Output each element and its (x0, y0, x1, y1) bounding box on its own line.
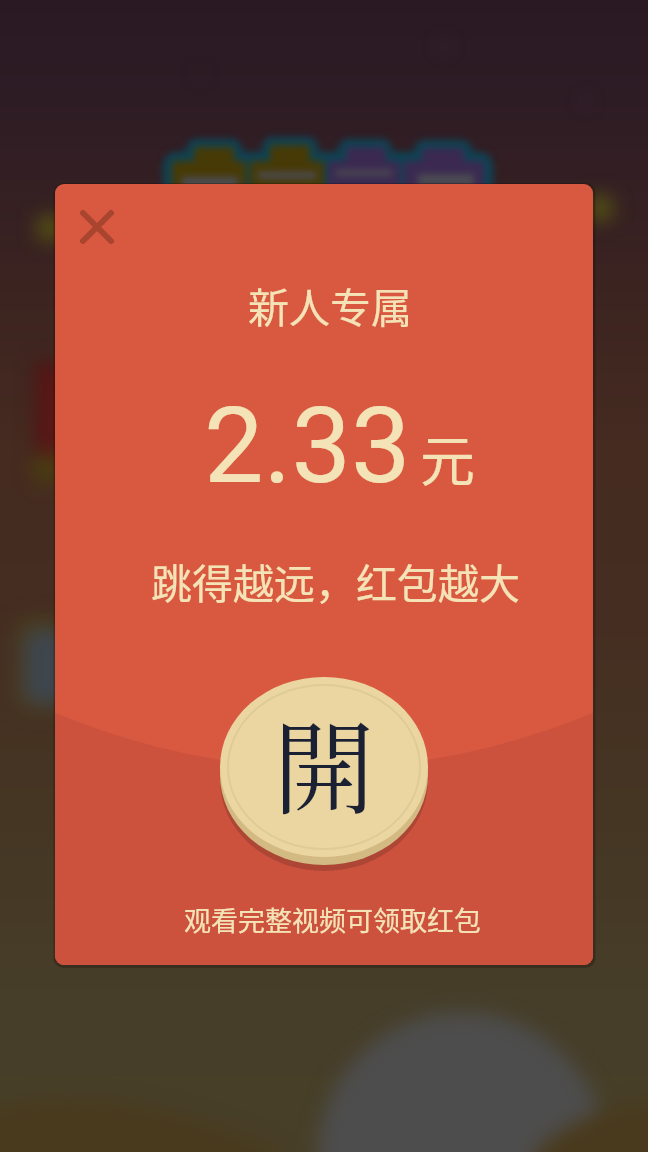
staticText: 元 (420, 417, 476, 497)
staticText: 观看完整视频可领取红包 (184, 900, 481, 939)
staticText: 新人专属 (248, 275, 412, 334)
button[interactable]: 开红包 (206, 659, 442, 875)
staticText: 跳得越远，红包越大 (151, 551, 520, 610)
staticText: 開 (273, 689, 375, 836)
staticText: 2.33 (204, 384, 411, 508)
button[interactable]: Close (61, 191, 133, 263)
